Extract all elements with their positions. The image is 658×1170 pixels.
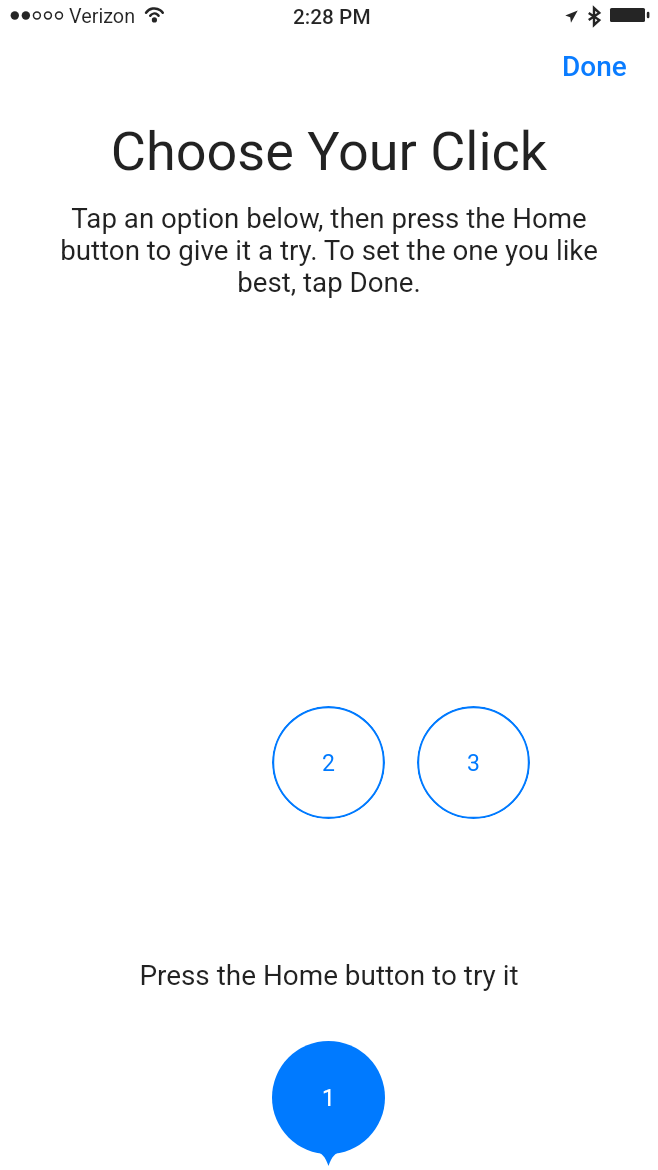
staticText: Done (562, 50, 627, 83)
button[interactable]: Home button click option 3 (417, 706, 530, 819)
staticText: Tap an option below, then press the Home… (48, 202, 610, 298)
button[interactable]: Home button click option 2 (272, 706, 385, 819)
staticText: Press the Home button to try it (0, 959, 658, 992)
staticText: Verizon (69, 5, 136, 28)
staticText: 3 (467, 750, 480, 777)
staticText: 2 (322, 750, 335, 777)
staticText: Choose Your Click (0, 120, 658, 183)
staticText: 2:28 PM (293, 5, 371, 29)
staticText: 1 (322, 1085, 335, 1112)
button[interactable]: Click setting 1 selected (272, 1041, 385, 1166)
button[interactable]: Done (544, 42, 645, 91)
